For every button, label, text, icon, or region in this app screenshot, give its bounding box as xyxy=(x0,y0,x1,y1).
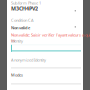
staticText: Identity xyxy=(11,38,23,44)
staticText: M3CH4PV2 xyxy=(11,5,38,12)
staticText: Non-valide: Saisir verifier l'ayant vale… xyxy=(11,32,90,43)
staticText: Sub-form Phase 1 xyxy=(11,0,41,6)
staticText: Nonvalide xyxy=(11,25,30,30)
staticText: Condition CA xyxy=(11,17,34,23)
staticText: Modes xyxy=(11,72,23,77)
staticText: Anonymized Identity xyxy=(11,57,46,63)
